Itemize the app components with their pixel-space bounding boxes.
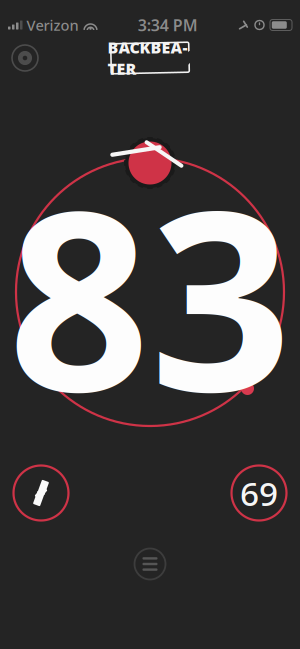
button[interactable]: Tap tempo: [8, 460, 74, 526]
staticText: 69: [240, 471, 278, 515]
button[interactable]: Settings: [8, 41, 42, 75]
staticText: 83: [8, 130, 292, 460]
button[interactable]: Sensitivity 69: [226, 460, 292, 526]
staticText: Verizon: [26, 15, 78, 35]
staticText: BACKBEATER: [107, 37, 187, 79]
button[interactable]: Menu: [128, 542, 172, 586]
staticText: 3:34 PM: [138, 14, 198, 36]
